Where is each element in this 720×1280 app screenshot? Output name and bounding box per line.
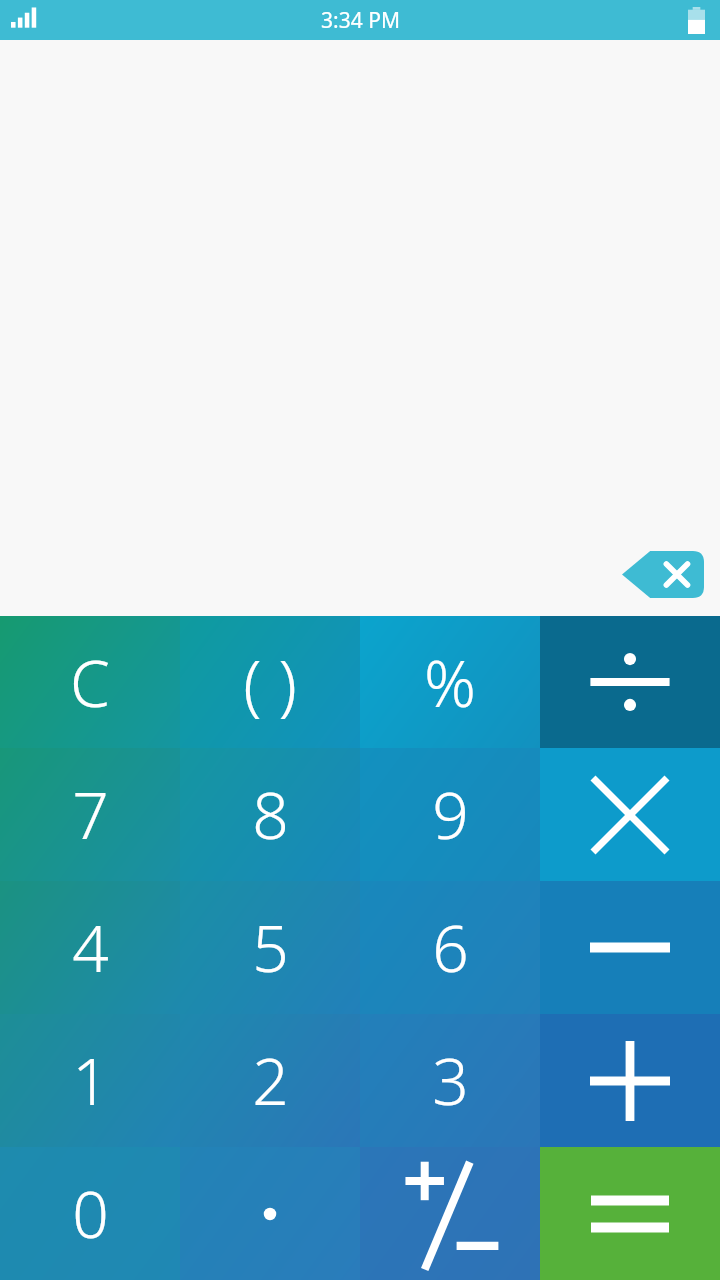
staticText: C xyxy=(70,639,110,726)
button[interactable]: Equals xyxy=(540,1147,720,1280)
button[interactable]: 7 xyxy=(0,748,180,881)
button[interactable]: C xyxy=(0,616,180,748)
button[interactable]: 6 xyxy=(360,881,540,1014)
staticText: 7 xyxy=(72,771,109,858)
button[interactable]: 0 xyxy=(0,1147,180,1280)
button[interactable]: Plus xyxy=(540,1014,720,1147)
staticText: 5 xyxy=(252,904,289,991)
staticText: 3:34 PM xyxy=(321,6,400,35)
staticText: 4 xyxy=(72,904,109,991)
button[interactable]: Decimal point xyxy=(180,1147,360,1280)
button[interactable]: 1 xyxy=(0,1014,180,1147)
staticText: ( ) xyxy=(243,637,297,727)
button[interactable]: Backspace xyxy=(622,551,704,598)
staticText: % xyxy=(424,639,476,726)
button[interactable]: 5 xyxy=(180,881,360,1014)
button[interactable]: Minus xyxy=(540,881,720,1014)
staticText: 9 xyxy=(432,771,469,858)
staticText: 8 xyxy=(252,771,289,858)
button[interactable]: 8 xyxy=(180,748,360,881)
staticText: 1 xyxy=(72,1037,109,1124)
button[interactable]: Plus minus sign xyxy=(360,1147,540,1280)
staticText: 0 xyxy=(72,1170,109,1257)
staticText: 6 xyxy=(432,904,469,991)
button[interactable]: 9 xyxy=(360,748,540,881)
button[interactable]: 4 xyxy=(0,881,180,1014)
button[interactable]: Divide xyxy=(540,616,720,748)
button[interactable]: % xyxy=(360,616,540,748)
button[interactable]: 2 xyxy=(180,1014,360,1147)
button[interactable]: 3 xyxy=(360,1014,540,1147)
staticText: 2 xyxy=(252,1037,289,1124)
button[interactable]: Multiply xyxy=(540,748,720,881)
staticText: 3 xyxy=(432,1037,469,1124)
button[interactable]: ( ) xyxy=(180,616,360,748)
